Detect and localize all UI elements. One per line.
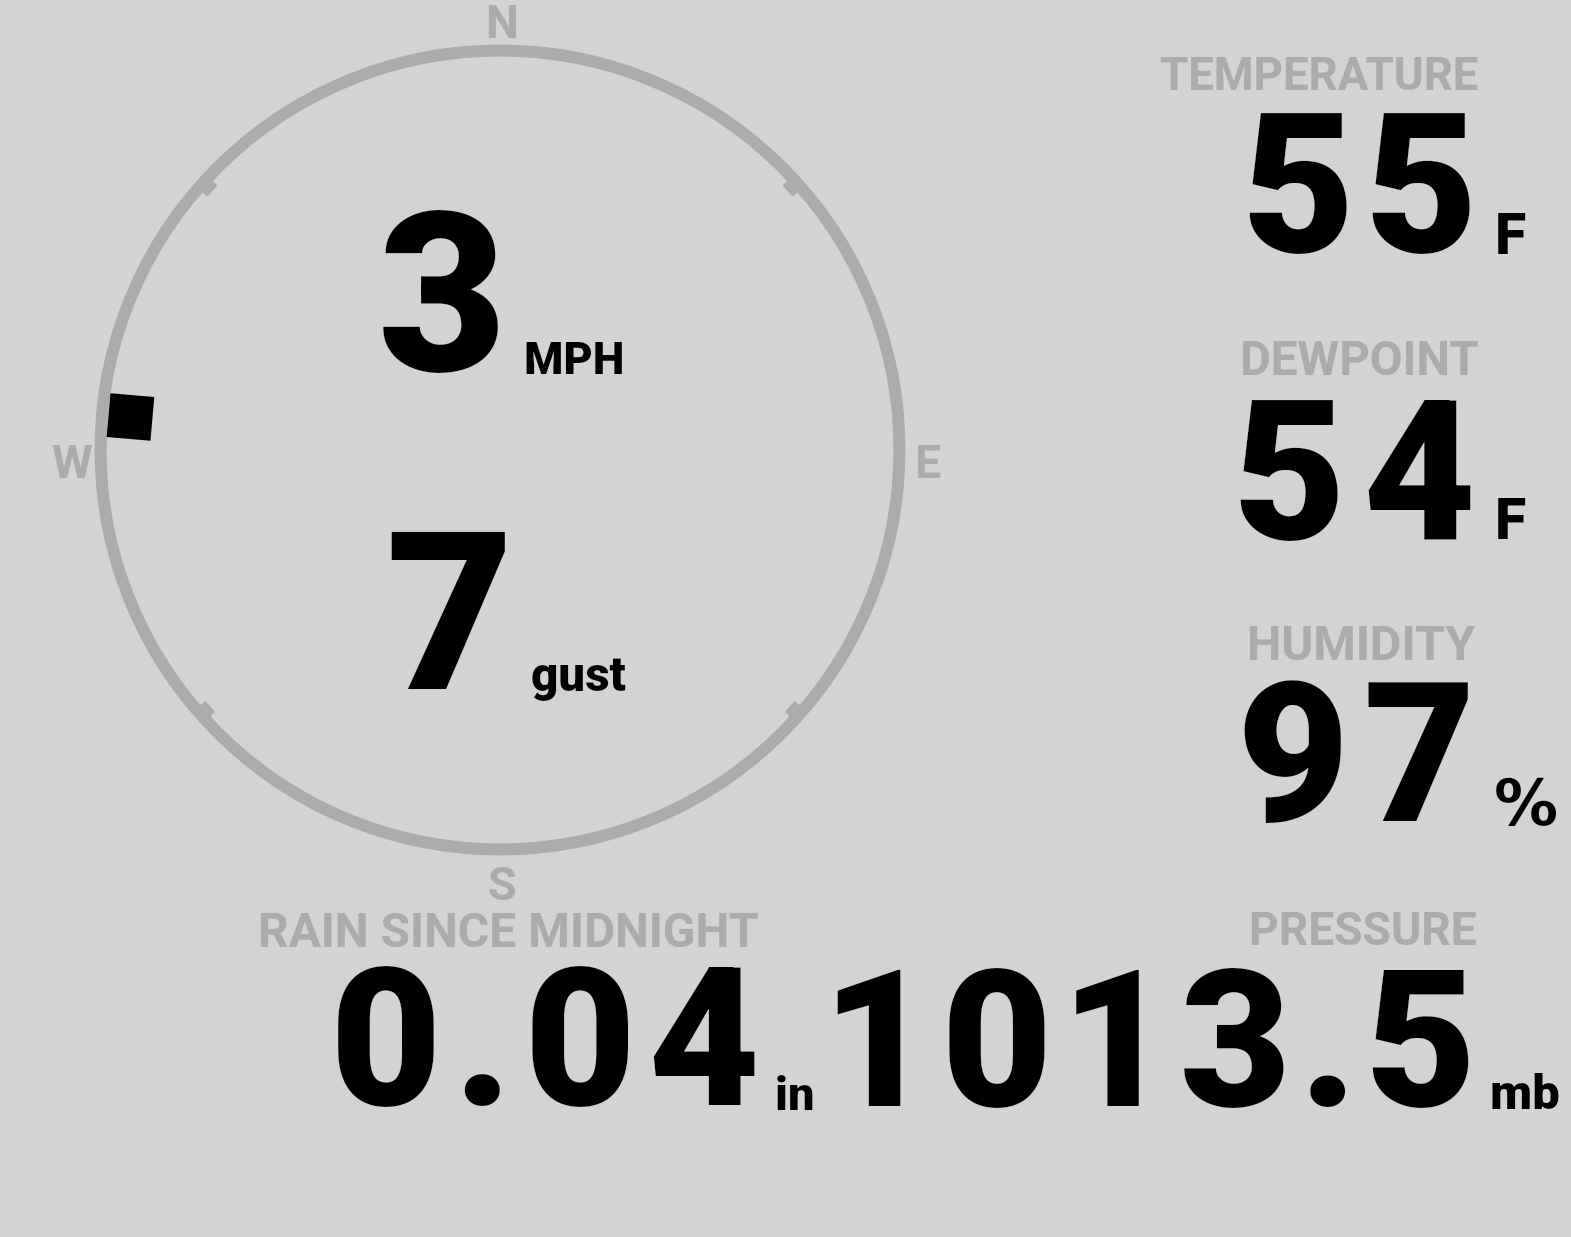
button[interactable]: Dewpoint 54 degrees Fahrenheit: [1000, 325, 1560, 555]
staticText: E: [915, 435, 942, 489]
staticText: DEWPOINT: [1240, 331, 1479, 387]
staticText: RAIN SINCE MIDNIGHT: [258, 903, 759, 959]
staticText: S: [488, 857, 517, 911]
button[interactable]: Rain since midnight 0.04 inches: [240, 895, 800, 1125]
staticText: 54: [1233, 358, 1494, 587]
staticText: gust: [531, 647, 626, 703]
staticText: %: [1494, 766, 1559, 841]
staticText: PRESSURE: [1249, 902, 1477, 956]
staticText: 7: [386, 484, 515, 743]
staticText: 1013.5: [822, 928, 1485, 1153]
staticText: MPH: [524, 332, 625, 385]
staticText: N: [486, 0, 519, 49]
button[interactable]: Pressure 1013.5 millibars: [810, 895, 1560, 1125]
staticText: in: [775, 1066, 815, 1121]
staticText: F: [1495, 486, 1527, 553]
staticText: 55: [1242, 71, 1489, 300]
staticText: F: [1495, 201, 1527, 268]
button[interactable]: Wind 3 miles per hour, gusting 7, direct…: [60, 0, 960, 900]
staticText: W: [52, 435, 93, 489]
button[interactable]: Temperature 55 degrees Fahrenheit: [1000, 40, 1560, 270]
staticText: mb: [1490, 1064, 1560, 1121]
staticText: 3: [378, 165, 507, 425]
staticText: TEMPERATURE: [1160, 48, 1479, 101]
button[interactable]: Humidity 97 percent: [1000, 610, 1560, 840]
staticText: 0.04: [330, 926, 773, 1152]
staticText: 97: [1237, 641, 1490, 868]
staticText: HUMIDITY: [1247, 615, 1476, 672]
